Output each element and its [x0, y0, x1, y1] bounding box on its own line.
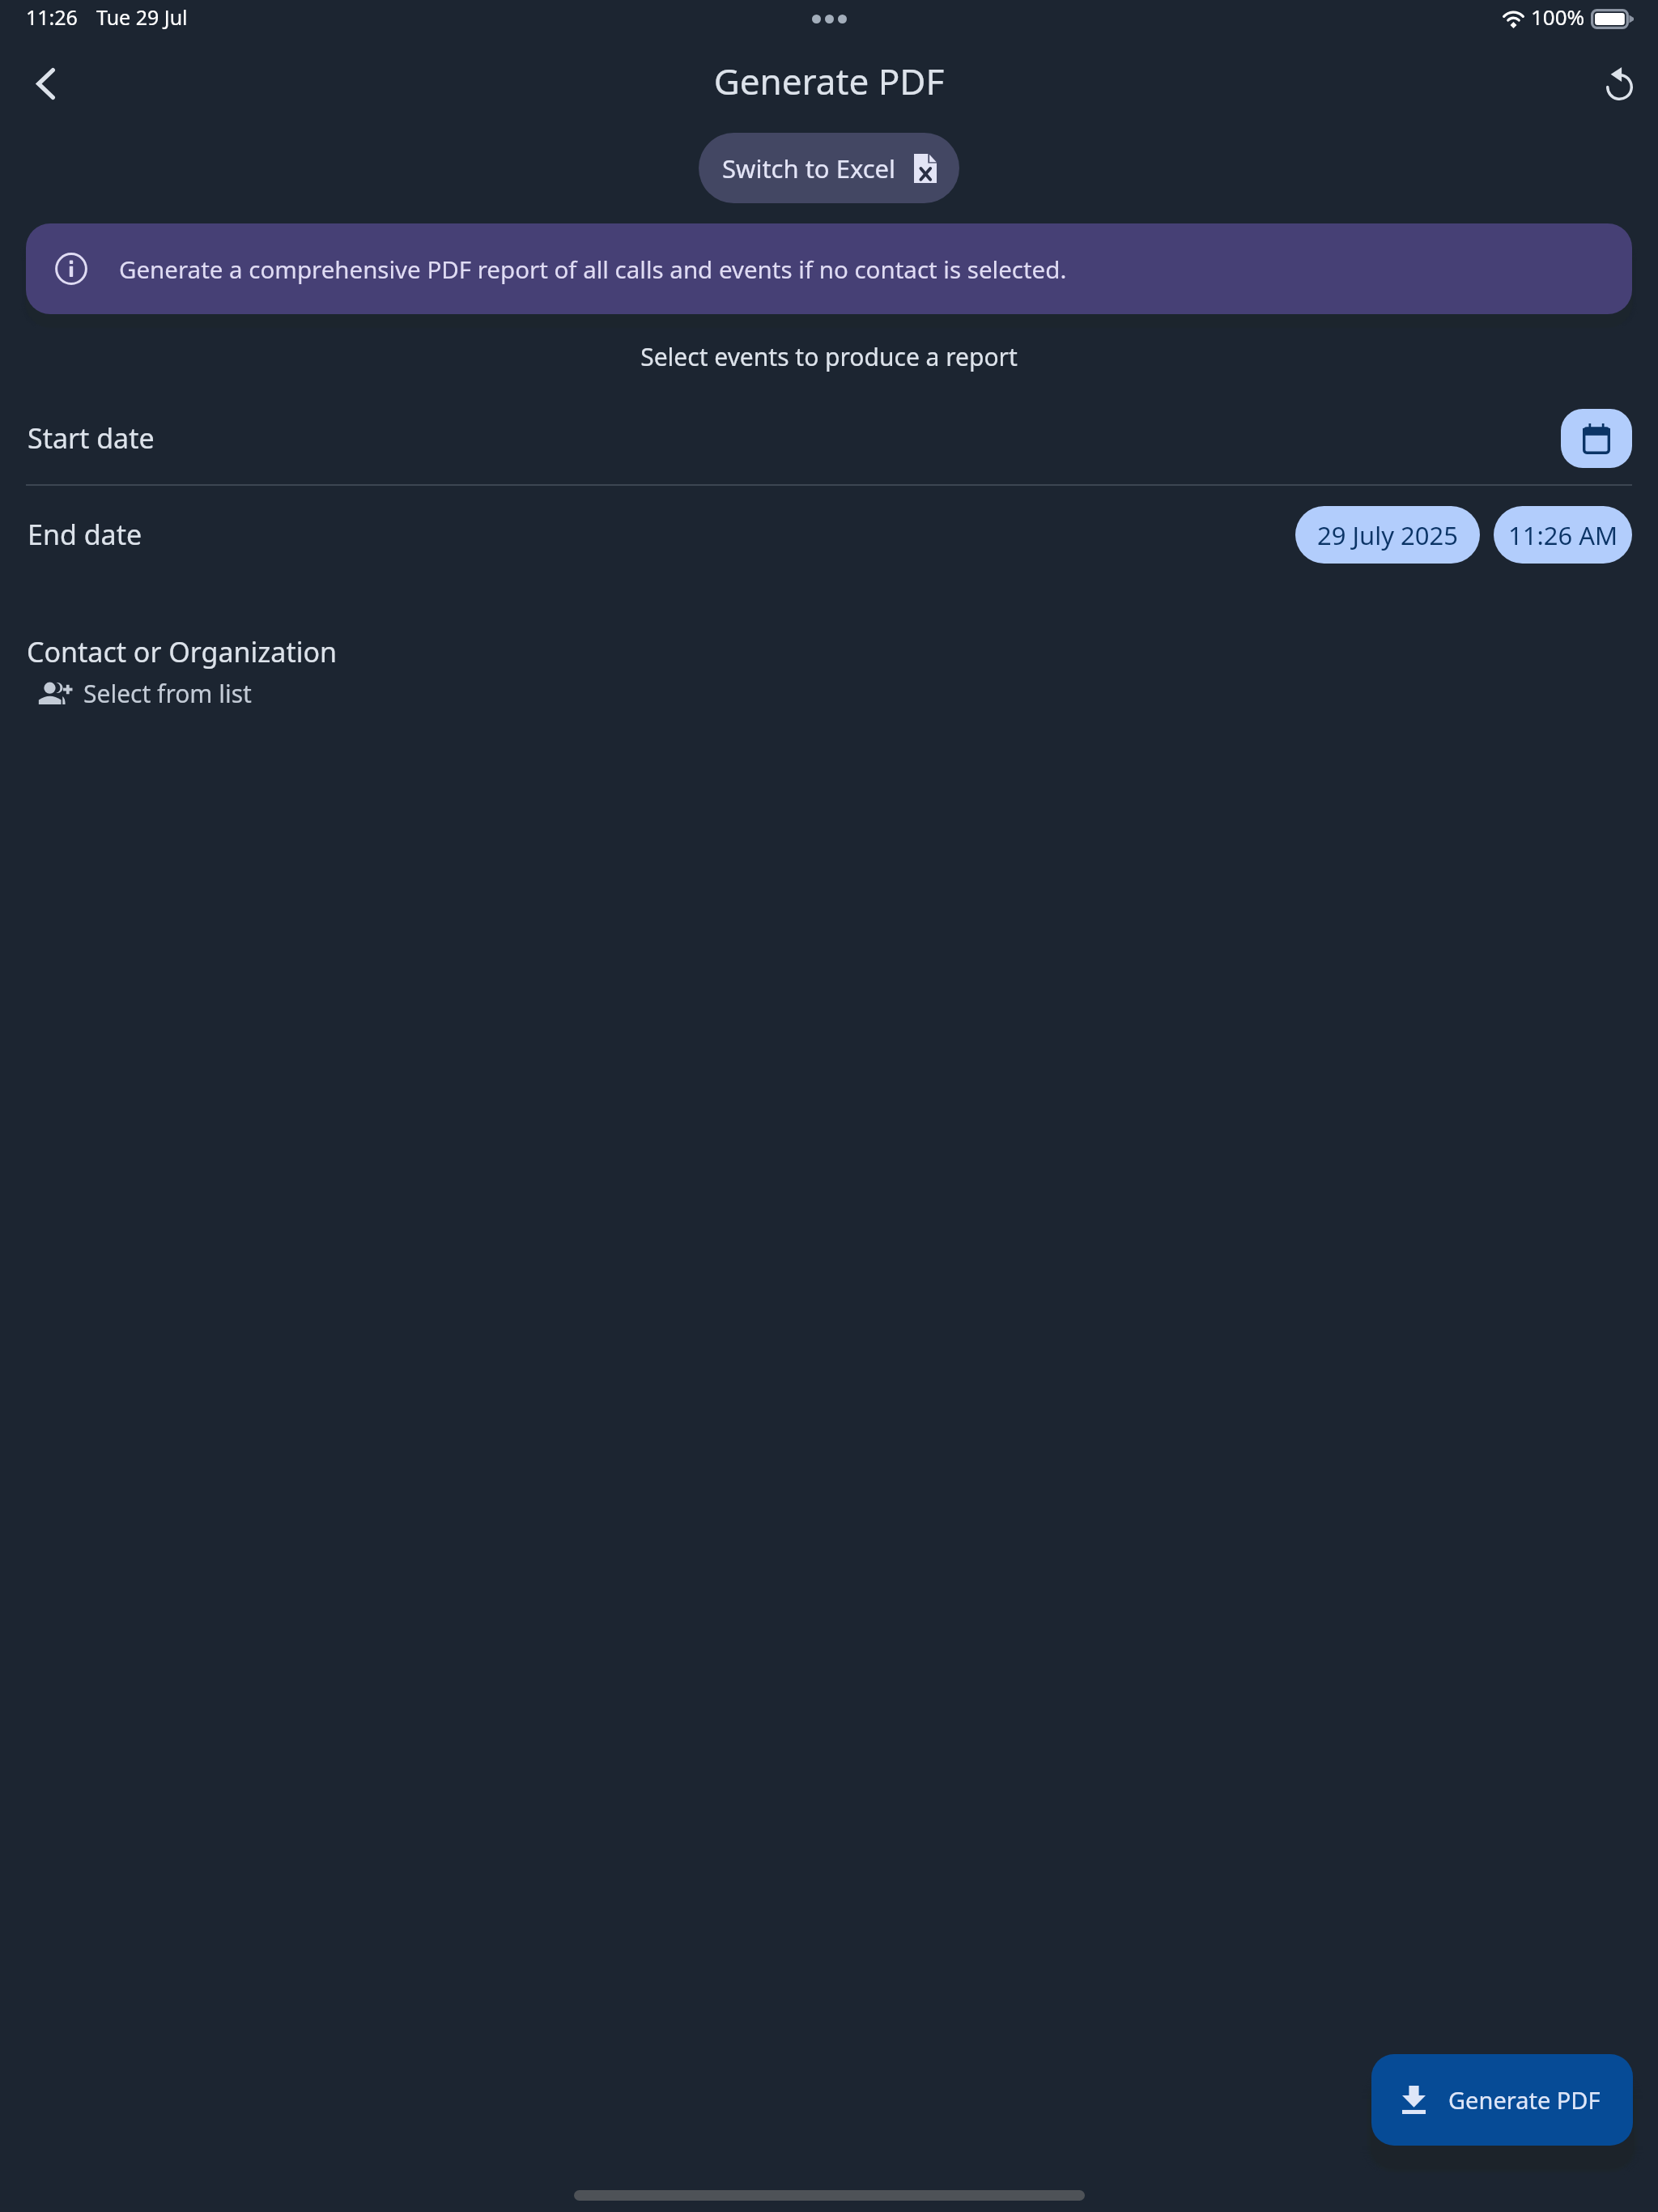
button[interactable]: Back	[18, 56, 73, 111]
staticText: 11:26	[26, 3, 78, 31]
staticText: Generate PDF	[1448, 2084, 1601, 2116]
button[interactable]: Start date	[0, 390, 1658, 486]
staticText: 11:26 AM	[1508, 518, 1618, 552]
staticText: Contact or Organization	[27, 633, 338, 670]
staticText: 100%	[1531, 2, 1585, 31]
button[interactable]: Generate PDF	[1371, 2054, 1633, 2146]
staticText: Tue 29 Jul	[96, 3, 188, 31]
staticText: 29 July 2025	[1317, 518, 1458, 552]
staticText: Select from list	[83, 677, 252, 710]
staticText: End date	[28, 516, 142, 553]
button[interactable]: Select from list	[28, 674, 263, 713]
staticText: Select events to produce a report	[0, 340, 1658, 373]
button[interactable]: 29 July 2025	[1295, 506, 1480, 564]
staticText: Start date	[28, 419, 155, 457]
button[interactable]: End date	[0, 487, 1658, 582]
button[interactable]: Generate a comprehensive PDF report of a…	[26, 223, 1632, 314]
staticText: Generate PDF	[0, 57, 1658, 105]
staticText: Generate a comprehensive PDF report of a…	[119, 253, 1067, 285]
staticText: Switch to Excel	[722, 151, 896, 185]
button[interactable]: 11:26 AM	[1494, 506, 1632, 564]
button[interactable]: Pick start date	[1561, 409, 1632, 468]
button[interactable]: Reset	[1592, 56, 1647, 111]
button[interactable]: Switch to Excel	[699, 133, 959, 203]
